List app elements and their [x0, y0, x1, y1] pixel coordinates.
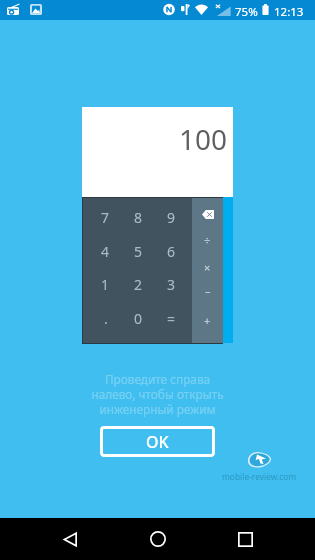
button[interactable]: Back [49, 518, 90, 560]
staticText: mobile-review.com [222, 471, 297, 482]
button[interactable]: ÷ [192, 227, 223, 253]
button[interactable]: 5 [122, 235, 155, 267]
button[interactable]: = [155, 302, 188, 334]
button[interactable]: Backspace [192, 201, 223, 227]
staticText: 8 [134, 208, 143, 227]
staticText: 0 [134, 309, 143, 328]
staticText: . [104, 309, 108, 328]
button[interactable]: × [192, 254, 223, 280]
button[interactable]: – [192, 277, 223, 303]
button[interactable]: 8 [122, 201, 155, 233]
button[interactable]: 2 [122, 268, 155, 300]
staticText: 75% [235, 4, 258, 20]
button[interactable]: Home [137, 518, 178, 560]
button[interactable]: 7 [89, 201, 122, 233]
staticText: × [204, 260, 211, 275]
button[interactable]: OK [100, 426, 215, 457]
staticText: 5 [134, 242, 143, 261]
staticText: + [204, 313, 211, 328]
button[interactable]: 3 [155, 268, 188, 300]
staticText: OK [146, 431, 169, 453]
staticText: 12:13 [274, 4, 304, 20]
staticText: 9 [167, 208, 176, 227]
staticText: 2 [134, 275, 143, 294]
staticText: – [205, 283, 211, 298]
button[interactable]: + [192, 307, 223, 333]
button[interactable]: 0 [122, 302, 155, 334]
staticText: 6 [167, 242, 176, 261]
button[interactable]: 4 [89, 235, 122, 267]
staticText: 3 [167, 275, 176, 294]
staticText: 1 [101, 275, 110, 294]
staticText: ÷ [204, 233, 211, 248]
staticText: 7 [101, 208, 110, 227]
staticText: 100 [179, 120, 228, 158]
button[interactable]: 9 [155, 201, 188, 233]
button[interactable]: 1 [89, 268, 122, 300]
button[interactable]: 6 [155, 235, 188, 267]
button[interactable]: . [89, 302, 122, 334]
staticText: 4 [101, 242, 110, 261]
button[interactable]: Recents [225, 518, 266, 560]
staticText: = [167, 309, 176, 328]
staticText: Проведите справа налево, чтобы открыть и… [91, 371, 224, 417]
